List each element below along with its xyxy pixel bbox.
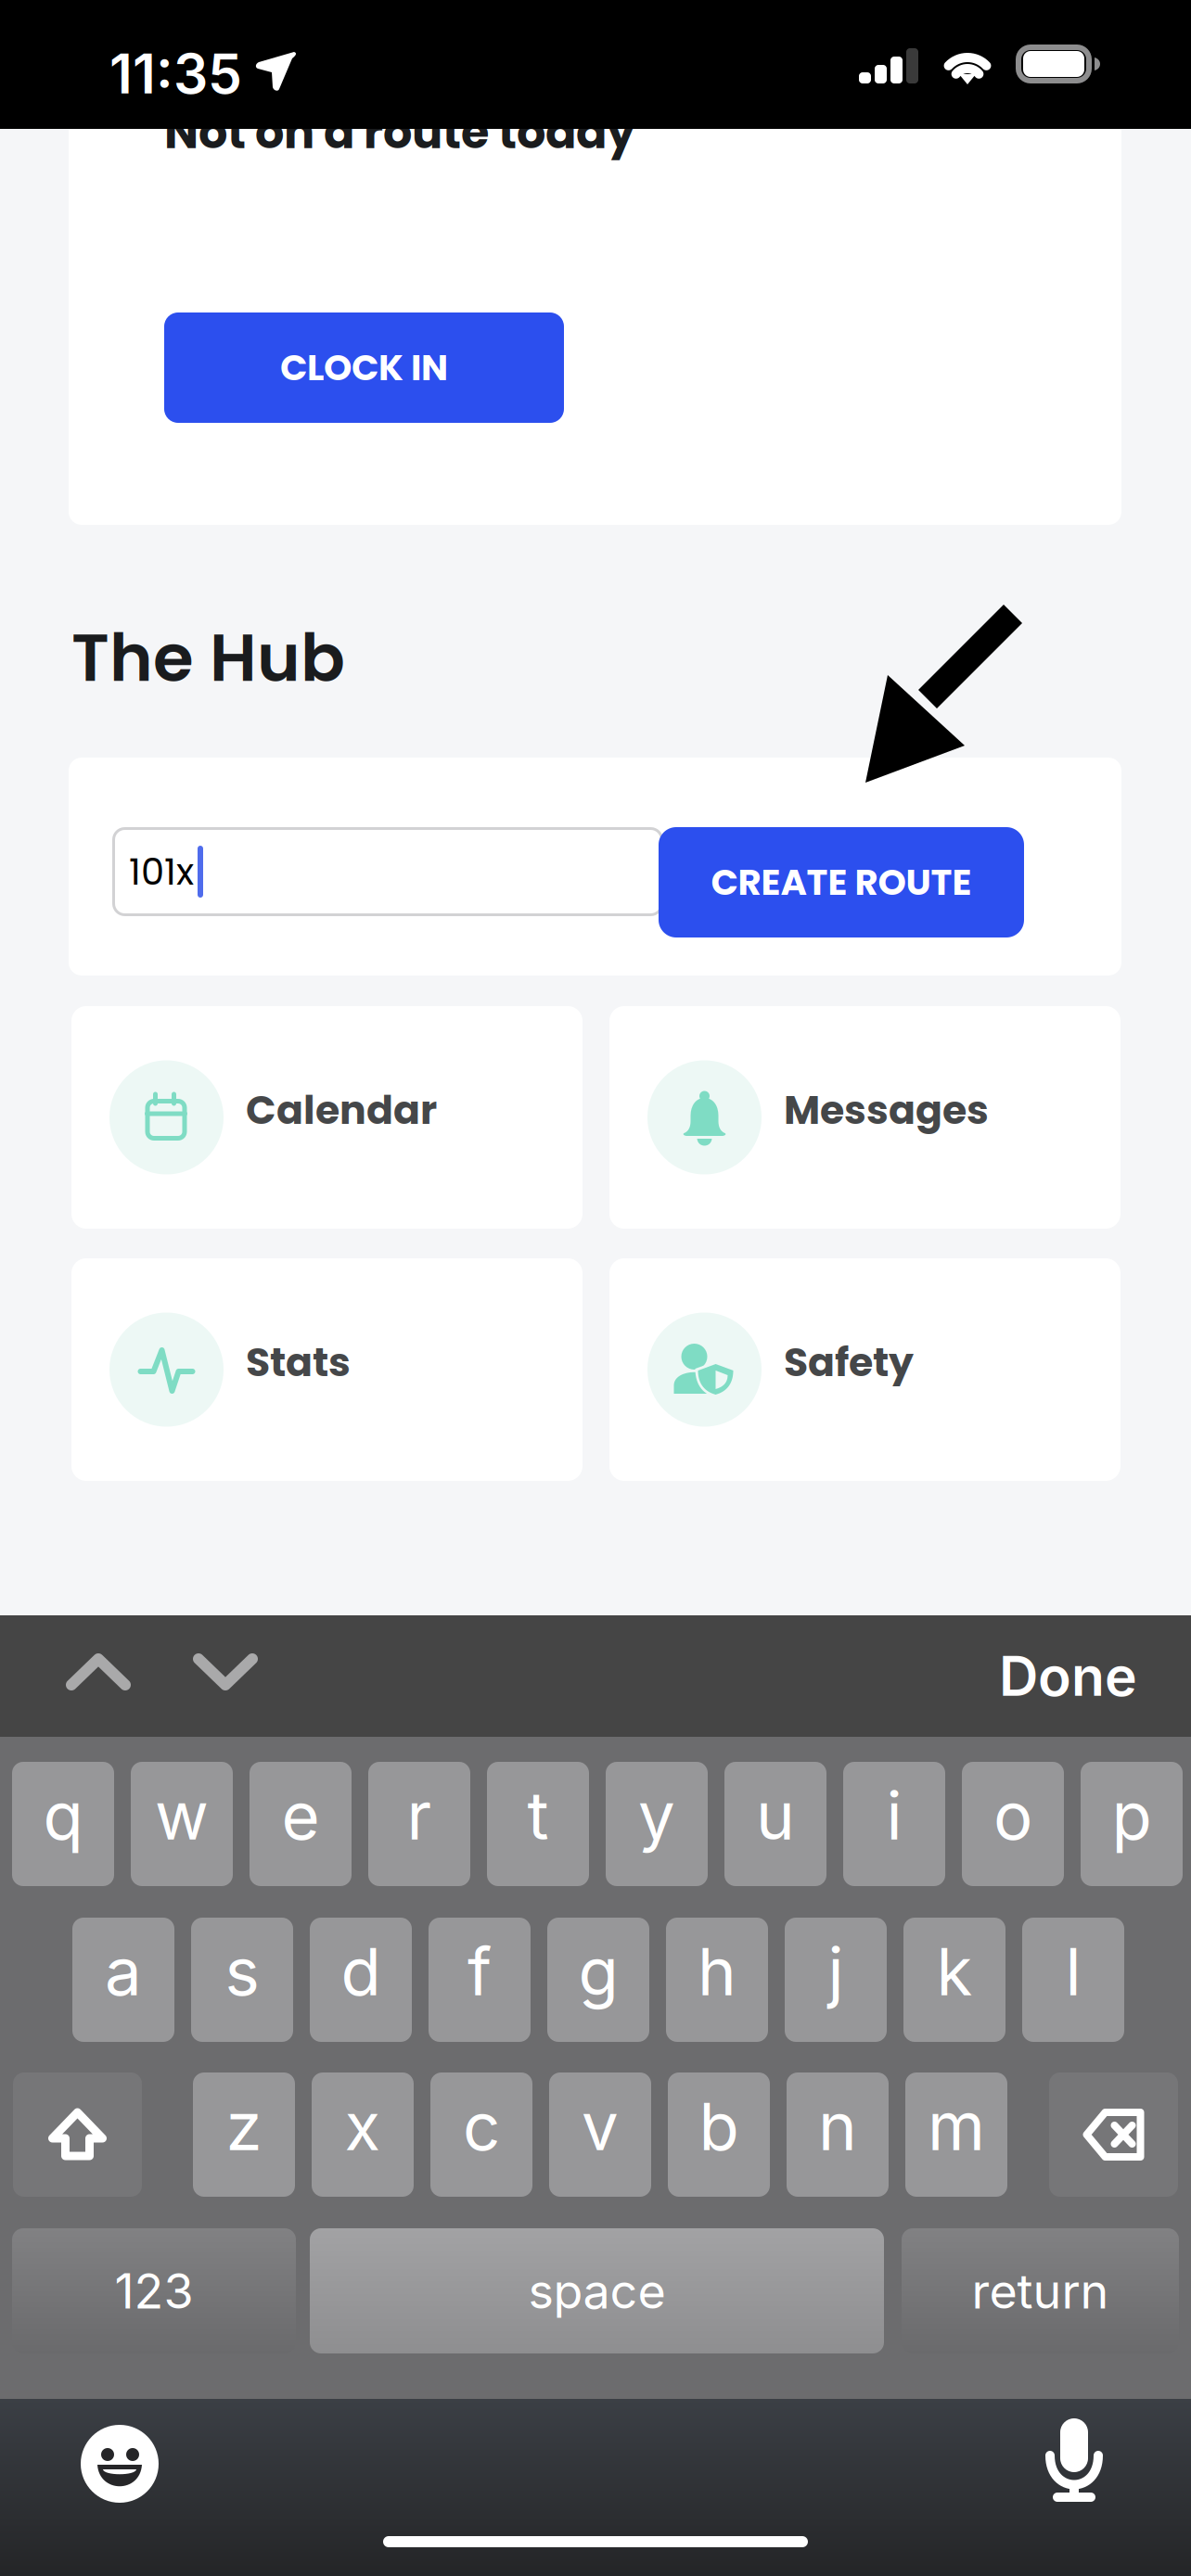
staticText: e — [282, 1776, 320, 1855]
button[interactable]: Messages — [609, 1006, 1121, 1229]
button[interactable]: 123 — [12, 2228, 296, 2353]
staticText: r — [407, 1776, 432, 1855]
button[interactable]: o — [962, 1762, 1064, 1886]
staticText: w — [155, 1776, 209, 1855]
button[interactable]: h — [666, 1918, 768, 2042]
staticText: a — [105, 1932, 142, 2011]
staticText: i — [886, 1776, 902, 1855]
staticText: q — [43, 1776, 83, 1855]
button[interactable]: CREATE ROUTE — [659, 827, 1024, 937]
staticText: The Hub — [71, 612, 345, 704]
staticText: m — [928, 2087, 985, 2166]
staticText: t — [527, 1776, 549, 1855]
staticText: n — [818, 2087, 857, 2166]
button[interactable]: z — [193, 2072, 295, 2197]
staticText: c — [463, 2087, 500, 2166]
button[interactable]: p — [1081, 1762, 1183, 1886]
button[interactable]: Done — [973, 1615, 1163, 1737]
button[interactable]: w — [131, 1762, 233, 1886]
button[interactable]: l — [1022, 1918, 1124, 2042]
staticText: 123 — [115, 2262, 193, 2320]
button[interactable]: Stats — [71, 1258, 583, 1481]
staticText: j — [828, 1932, 844, 2011]
button[interactable]: v — [549, 2072, 651, 2197]
staticText: g — [578, 1932, 618, 2011]
staticText: b — [699, 2087, 739, 2166]
button[interactable]: n — [787, 2072, 889, 2197]
button[interactable]: i — [843, 1762, 945, 1886]
button[interactable]: Shift — [13, 2072, 142, 2197]
staticText: z — [226, 2087, 262, 2166]
staticText: y — [638, 1776, 675, 1855]
staticText: u — [756, 1776, 795, 1855]
button[interactable]: b — [668, 2072, 770, 2197]
button[interactable]: Emoji keyboard — [81, 2425, 159, 2503]
staticText: 11:35 — [109, 41, 242, 107]
staticText: p — [1112, 1776, 1152, 1855]
staticText: Calendar — [246, 1082, 437, 1138]
button[interactable]: CLOCK IN — [164, 312, 564, 423]
button[interactable]: j — [785, 1918, 887, 2042]
button[interactable]: return — [902, 2228, 1179, 2353]
button[interactable]: r — [368, 1762, 470, 1886]
button[interactable]: Next field — [160, 1615, 291, 1728]
staticText: space — [528, 2262, 666, 2320]
staticText: CREATE ROUTE — [711, 857, 972, 907]
button[interactable]: g — [547, 1918, 649, 2042]
staticText: o — [993, 1776, 1032, 1855]
staticText: Not on a route today — [164, 100, 635, 164]
staticText: v — [582, 2087, 619, 2166]
staticText: Done — [999, 1643, 1137, 1709]
button[interactable]: c — [430, 2072, 532, 2197]
staticText: Stats — [246, 1334, 351, 1390]
staticText: s — [225, 1932, 259, 2011]
staticText: k — [936, 1932, 973, 2011]
button[interactable]: q — [12, 1762, 114, 1886]
button[interactable]: space — [310, 2228, 884, 2353]
button[interactable]: k — [903, 1918, 1005, 2042]
staticText: x — [345, 2087, 381, 2166]
staticText: f — [467, 1932, 492, 2011]
button[interactable]: Calendar — [71, 1006, 583, 1229]
button[interactable]: Safety — [609, 1258, 1121, 1481]
staticText: h — [698, 1932, 736, 2011]
staticText: 101x — [129, 846, 194, 898]
button[interactable]: x — [312, 2072, 414, 2197]
button[interactable]: u — [724, 1762, 826, 1886]
staticText: Safety — [784, 1334, 914, 1390]
staticText: l — [1065, 1932, 1081, 2011]
staticText: d — [341, 1932, 381, 2011]
staticText: CLOCK IN — [280, 343, 448, 393]
button[interactable]: e — [250, 1762, 352, 1886]
button[interactable]: d — [310, 1918, 412, 2042]
button[interactable]: f — [429, 1918, 531, 2042]
button[interactable]: Dictation — [1045, 2418, 1103, 2502]
button[interactable]: t — [487, 1762, 589, 1886]
button[interactable]: y — [606, 1762, 708, 1886]
button[interactable]: Delete — [1049, 2072, 1178, 2197]
staticText: Messages — [784, 1082, 989, 1138]
button[interactable]: m — [905, 2072, 1007, 2197]
button[interactable]: Previous field — [32, 1615, 164, 1728]
button[interactable]: a — [72, 1918, 174, 2042]
staticText: return — [972, 2262, 1109, 2320]
button[interactable]: s — [191, 1918, 293, 2042]
